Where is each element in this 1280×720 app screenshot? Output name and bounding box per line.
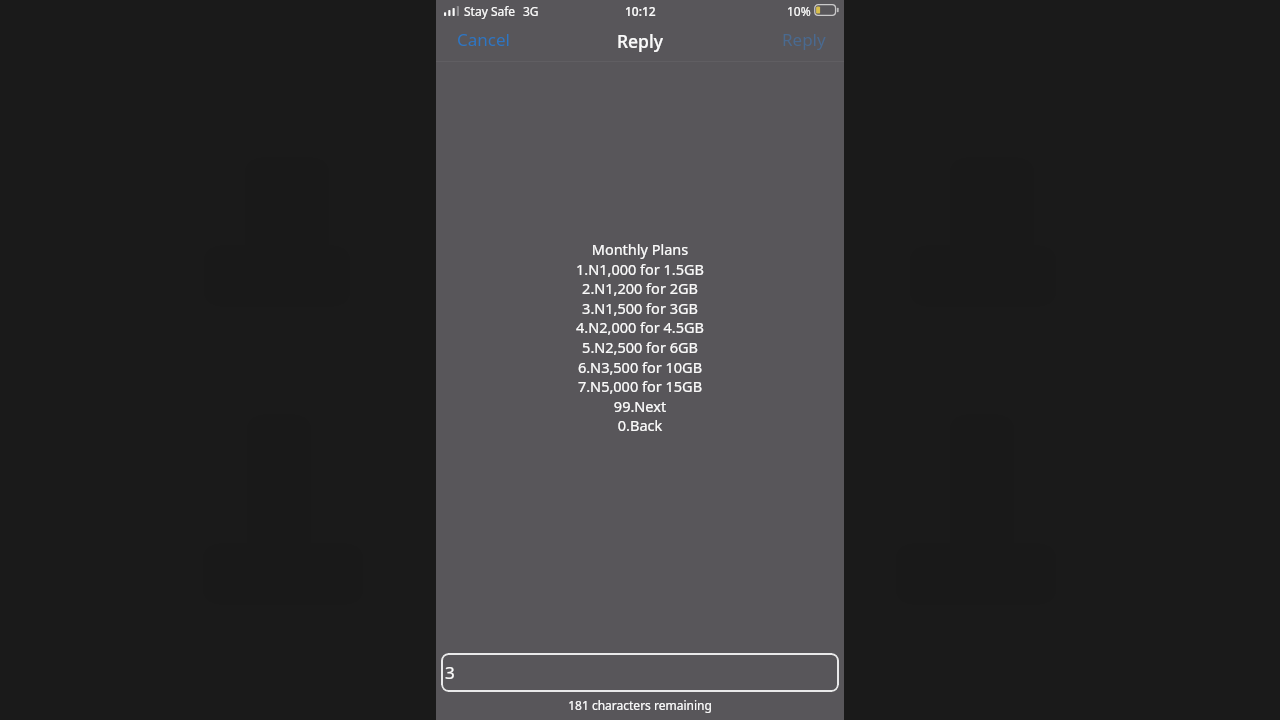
staticText: 5.N2,500 for 6GB: [436, 337, 844, 357]
staticText: 10:12: [625, 3, 656, 19]
staticText: 99.Next: [436, 396, 844, 416]
staticText: Stay Safe: [464, 3, 516, 19]
staticText: 6.N3,500 for 10GB: [436, 357, 844, 377]
staticText: 10%: [787, 3, 811, 19]
staticText: 1.N1,000 for 1.5GB: [436, 259, 844, 279]
other: Cellular signal strength: [444, 6, 459, 16]
staticText: Reply: [617, 29, 663, 53]
button[interactable]: Cancel: [436, 21, 531, 62]
staticText: 181 characters remaining: [436, 697, 844, 713]
staticText: 2.N1,200 for 2GB: [436, 278, 844, 298]
other: Battery 10 percent: [814, 4, 839, 16]
staticText: 0.Back: [436, 415, 844, 435]
staticText: Monthly Plans: [436, 239, 844, 259]
staticText: Cancel: [457, 28, 510, 51]
staticText: 3G: [523, 3, 539, 19]
staticText: 4.N2,000 for 4.5GB: [436, 317, 844, 337]
button[interactable]: Reply: [762, 21, 844, 62]
staticText: Reply: [782, 28, 826, 51]
staticText: 3.N1,500 for 3GB: [436, 298, 844, 318]
button[interactable]: 3: [441, 653, 839, 692]
staticText: 3: [445, 661, 455, 684]
staticText: 7.N5,000 for 15GB: [436, 376, 844, 396]
